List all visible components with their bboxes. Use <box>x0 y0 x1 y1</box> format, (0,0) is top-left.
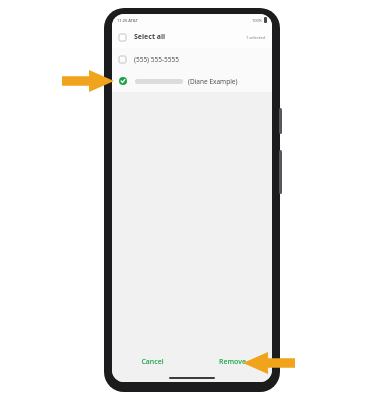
other: Pointer to selected contact <box>62 70 114 92</box>
staticText: (Diane Example) <box>188 77 238 86</box>
staticText: Select all <box>134 32 166 42</box>
staticText: Remove <box>219 357 246 367</box>
staticText: 100% <box>252 18 263 23</box>
button[interactable]: (555) 555-5555 <box>112 48 272 70</box>
button[interactable]: Remove <box>192 351 272 373</box>
other: Pointer to Remove button <box>243 352 295 374</box>
staticText: 11:25 AT&T <box>117 18 138 23</box>
staticText: Cancel <box>141 357 164 367</box>
staticText: 1 selected <box>246 35 265 40</box>
button[interactable]: Cancel <box>112 351 192 373</box>
button[interactable]: (Diane Example) <box>112 70 272 92</box>
staticText: (555) 555-5555 <box>134 55 179 64</box>
button[interactable]: Select all <box>112 26 272 48</box>
